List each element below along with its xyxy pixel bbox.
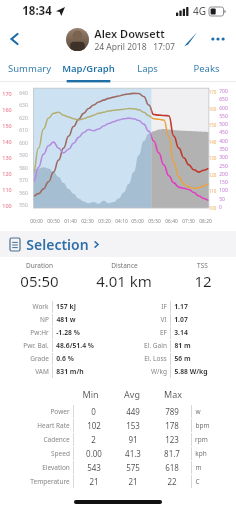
button[interactable]: Edit [177, 25, 205, 53]
staticText: 300 [219, 154, 228, 161]
staticText: Power [50, 407, 70, 416]
staticText [206, 147, 219, 153]
staticText: 02:30 [81, 218, 94, 225]
staticText: 350 [219, 146, 228, 153]
button[interactable]: Map/Graph [59, 56, 118, 80]
staticText: 590 [19, 152, 28, 159]
staticText: 550 [219, 113, 228, 120]
staticText: 06:40 [165, 218, 178, 225]
button[interactable]: Summary [0, 56, 59, 80]
button[interactable]: More options [205, 26, 231, 52]
staticText: 05:00 [131, 218, 144, 225]
staticText: Alex Dowsett [94, 26, 165, 41]
staticText: 150 [2, 122, 12, 129]
staticText: 650 [219, 96, 228, 103]
staticText: Selection [26, 235, 89, 254]
staticText: 00:00 [30, 218, 43, 225]
staticText: 789 [165, 406, 179, 417]
staticText: 22 [167, 476, 177, 487]
staticText: 0.00 [86, 448, 102, 459]
staticText: 100 [219, 187, 228, 194]
staticText [206, 97, 219, 103]
staticText [206, 130, 219, 136]
staticText: 200 [219, 171, 228, 178]
staticText: 250 [219, 163, 228, 170]
button[interactable]: Selection [0, 231, 236, 257]
staticText: bpm [195, 421, 210, 430]
staticText: El. Loss [144, 354, 167, 363]
staticText: Duration [26, 261, 53, 270]
staticText: 17:07 [153, 41, 175, 53]
staticText: 2 [91, 434, 96, 445]
staticText: Heart Rate [37, 421, 70, 430]
staticText: 630 [19, 102, 28, 109]
staticText: 1.17 [174, 302, 188, 311]
staticText: Pwr. Bal. [23, 341, 49, 350]
staticText: m [195, 463, 202, 472]
staticText: Laps [137, 62, 158, 75]
staticText: 560 [19, 190, 28, 197]
staticText: 618 [165, 462, 179, 473]
staticText: C [195, 477, 200, 486]
staticText: Min [82, 388, 99, 400]
staticText: 600 [219, 105, 228, 112]
staticText: 21 [128, 476, 138, 487]
staticText: 0 [219, 204, 222, 211]
staticText: 500 [219, 121, 228, 128]
staticText: 18:34 [22, 3, 52, 19]
staticText: El. Gain [144, 341, 167, 350]
staticText: 157 kJ [56, 302, 76, 311]
staticText: 05:50 [148, 218, 161, 225]
staticText: 1.07 [174, 315, 188, 324]
staticText: Map/Graph [62, 62, 115, 75]
staticText: 170 [206, 89, 219, 95]
staticText: 48.6/51.4 % [56, 341, 94, 350]
staticText: 449 [126, 406, 140, 417]
staticText: 120 [2, 170, 12, 177]
staticText: Grade [30, 354, 49, 363]
staticText: 24 April 2018 [94, 41, 147, 53]
staticText: 41.3 [125, 448, 141, 459]
staticText: 3.14 [174, 328, 188, 337]
staticText: 640 [19, 90, 28, 97]
staticText: -1.28 % [56, 328, 80, 337]
staticText: 4G [193, 4, 206, 18]
staticText: 4.01 km [96, 271, 152, 291]
staticText: 570 [19, 177, 28, 184]
staticText: 81.7 [164, 448, 180, 459]
staticText: Summary [8, 62, 51, 75]
staticText: 01:40 [64, 218, 77, 225]
staticText: 04:10 [115, 218, 128, 225]
staticText: TSS [197, 261, 208, 270]
staticText: 56 m [174, 354, 191, 363]
staticText: 150 [219, 179, 228, 186]
staticText: 12 [194, 271, 212, 291]
button[interactable]: Laps [118, 56, 177, 80]
staticText: IF [161, 302, 167, 311]
staticText [206, 180, 219, 186]
staticText: 450 [219, 129, 228, 136]
staticText: Avg [124, 388, 140, 400]
staticText: 00:50 [47, 218, 60, 225]
staticText: Speed [51, 449, 70, 458]
staticText: 100 [206, 205, 219, 211]
staticText: rpm [195, 435, 208, 444]
button[interactable]: Peaks [177, 56, 236, 80]
staticText: Temperature [30, 477, 70, 486]
staticText: w [195, 407, 201, 416]
staticText: 831 m/h [56, 367, 84, 376]
staticText: 481 w [56, 315, 76, 324]
staticText: 610 [19, 127, 28, 134]
staticText: 140 [2, 138, 12, 145]
staticText: Peaks [193, 62, 220, 75]
staticText: Cadence [43, 435, 70, 444]
staticText: 150 [206, 122, 219, 128]
staticText: VAM [35, 367, 49, 376]
staticText: 07:30 [182, 218, 195, 225]
staticText: 100 [2, 202, 12, 209]
staticText: 120 [206, 172, 219, 178]
staticText: 600 [19, 140, 28, 147]
button[interactable]: Back [0, 24, 30, 54]
staticText: 178 [165, 420, 179, 431]
staticText: Work [32, 302, 49, 311]
